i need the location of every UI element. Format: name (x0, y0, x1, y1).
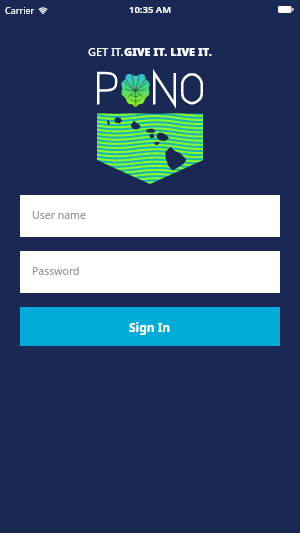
staticText: GET IT. (88, 44, 124, 59)
staticText: Carrier (5, 4, 35, 16)
staticText: User name (32, 208, 86, 222)
staticText: Sign In (129, 319, 171, 335)
staticText: GIVE IT. LIVE IT. (124, 44, 212, 59)
button[interactable]: Sign In (20, 307, 280, 346)
button[interactable]: Password (20, 251, 280, 293)
staticText: 10:35 AM (129, 3, 172, 16)
staticText: Password (32, 264, 80, 278)
button[interactable]: User name (20, 195, 280, 237)
